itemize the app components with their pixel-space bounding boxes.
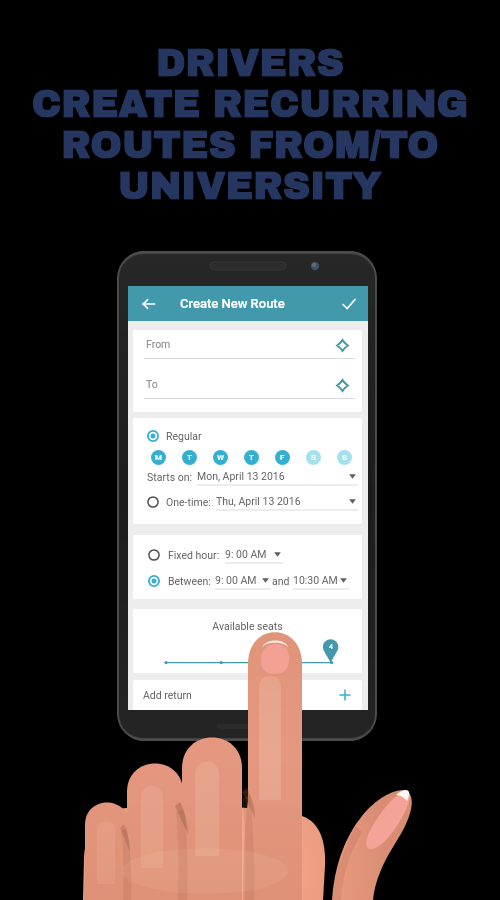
button[interactable]: Between:: [148, 573, 349, 589]
staticText: From: [146, 338, 171, 350]
button[interactable]: T: [244, 450, 259, 465]
button[interactable]: Add return trip: [337, 687, 353, 703]
staticText: Regular: [166, 430, 202, 442]
button[interactable]: Back: [128, 286, 169, 321]
staticText: CREATE RECURRING: [0, 84, 500, 125]
staticText: 9: 00 AM: [225, 548, 267, 560]
button[interactable]: Thu, April 13 2016: [216, 494, 358, 510]
staticText: To: [146, 378, 158, 390]
staticText: Thu, April 13 2016: [216, 495, 301, 507]
staticText: 10:30 AM: [293, 574, 338, 586]
button[interactable]: 10:30 AM: [293, 573, 349, 589]
staticText: W: [217, 453, 225, 462]
staticText: Starts on:: [147, 471, 192, 483]
staticText: M: [155, 453, 163, 462]
button[interactable]: S: [337, 450, 352, 465]
button[interactable]: Mon, April 13 2016: [197, 469, 358, 485]
button[interactable]: Save route: [329, 286, 368, 321]
staticText: and: [272, 575, 290, 587]
staticText: Fixed hour:: [168, 549, 220, 561]
staticText: Mon, April 13 2016: [197, 470, 285, 482]
staticText: One-time:: [166, 496, 211, 508]
button[interactable]: M: [151, 450, 166, 465]
staticText: UNIVERSITY: [0, 166, 500, 207]
button[interactable]: Pick location: [332, 375, 352, 395]
button[interactable]: Available seats slider: [133, 609, 362, 673]
staticText: DRIVERS: [0, 43, 500, 84]
button[interactable]: To: [133, 370, 362, 410]
button[interactable]: From: [133, 330, 362, 370]
staticText: S: [311, 453, 316, 462]
button[interactable]: F: [275, 450, 290, 465]
button[interactable]: Fixed hour:: [148, 547, 283, 563]
staticText: ROUTES FROM/TO: [0, 125, 500, 166]
button[interactable]: One-time:: [147, 494, 358, 510]
button[interactable]: Add return: [133, 680, 362, 710]
staticText: 9: 00 AM: [215, 574, 257, 586]
button[interactable]: T: [182, 450, 197, 465]
staticText: 4: [329, 643, 333, 651]
staticText: S: [342, 453, 347, 462]
staticText: T: [249, 453, 254, 462]
staticText: Add return: [143, 689, 192, 701]
button[interactable]: 9: 00 AM: [215, 573, 271, 589]
staticText: T: [187, 453, 192, 462]
button[interactable]: 9: 00 AM: [225, 547, 283, 563]
button[interactable]: Regular: [147, 429, 202, 443]
button[interactable]: W: [213, 450, 228, 465]
button[interactable]: S: [306, 450, 321, 465]
staticText: Between:: [168, 575, 211, 587]
staticText: Available seats: [133, 620, 362, 632]
staticText: Create New Route: [180, 296, 285, 311]
button[interactable]: Pick location: [332, 335, 352, 355]
staticText: F: [280, 453, 285, 462]
